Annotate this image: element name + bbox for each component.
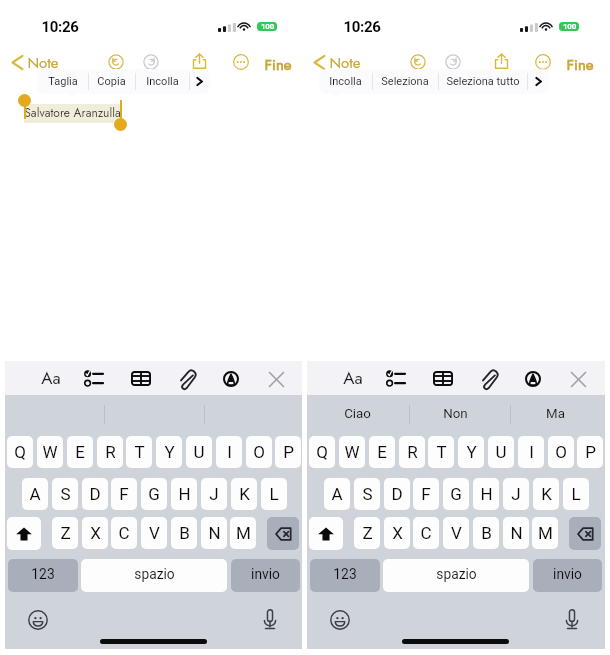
button[interactable]: Ciao <box>317 398 397 430</box>
button[interactable]: B <box>473 517 499 549</box>
button[interactable]: A <box>324 478 350 510</box>
button[interactable]: J <box>201 478 227 510</box>
button[interactable]: I <box>518 436 544 468</box>
button[interactable]: Close <box>268 371 285 388</box>
button[interactable]: Emoji <box>28 610 48 630</box>
button[interactable]: C <box>111 517 137 549</box>
button[interactable]: Dictation <box>565 609 579 630</box>
button[interactable]: Y <box>156 436 182 468</box>
button[interactable]: Undo <box>108 54 124 70</box>
button[interactable]: Note <box>313 51 361 74</box>
button[interactable]: More options <box>189 69 210 94</box>
button[interactable]: invio <box>533 559 602 592</box>
button[interactable]: Shift <box>7 517 41 550</box>
button[interactable]: S <box>52 478 78 510</box>
button[interactable]: Note <box>11 51 59 74</box>
button[interactable]: Shift <box>309 517 343 550</box>
button[interactable]: R <box>399 436 425 468</box>
button[interactable]: X <box>82 517 108 549</box>
button[interactable]: Redo <box>445 54 461 70</box>
button[interactable]: G <box>443 478 469 510</box>
button[interactable]: Dictation <box>263 609 277 630</box>
button[interactable]: Y <box>458 436 484 468</box>
button[interactable]: More <box>535 54 551 70</box>
button[interactable]: Backspace <box>267 517 299 550</box>
button[interactable]: F <box>111 478 137 510</box>
button[interactable]: H <box>473 478 499 510</box>
button[interactable]: More options <box>527 69 549 94</box>
button[interactable]: U <box>488 436 514 468</box>
button[interactable]: O <box>246 436 272 468</box>
button[interactable]: O <box>548 436 574 468</box>
button[interactable]: M <box>230 517 256 549</box>
button[interactable]: W <box>339 436 365 468</box>
button[interactable]: D <box>82 478 108 510</box>
button[interactable]: Z <box>354 517 380 549</box>
button[interactable]: F <box>413 478 439 510</box>
button[interactable]: G <box>141 478 167 510</box>
button[interactable]: N <box>503 517 529 549</box>
button[interactable]: spazio <box>81 559 227 592</box>
button[interactable]: M <box>532 517 558 549</box>
button[interactable]: Markup <box>525 371 541 387</box>
button[interactable]: Checklist <box>84 370 103 387</box>
button[interactable]: U <box>186 436 212 468</box>
button[interactable]: 123 <box>8 559 78 592</box>
button[interactable]: Undo <box>410 54 426 70</box>
button[interactable]: H <box>171 478 197 510</box>
button[interactable]: A <box>22 478 48 510</box>
button[interactable]: Table <box>131 371 151 386</box>
button[interactable]: Share <box>192 53 207 69</box>
button[interactable]: Redo <box>143 54 159 70</box>
button[interactable]: C <box>413 517 439 549</box>
button[interactable]: Non <box>415 398 495 430</box>
button[interactable]: Fine <box>566 54 594 76</box>
button[interactable]: Seleziona <box>372 69 438 94</box>
button[interactable]: Q <box>7 436 33 468</box>
button[interactable]: spazio <box>383 559 529 592</box>
button[interactable]: Fine <box>264 54 292 76</box>
button[interactable]: Ma <box>515 398 595 430</box>
button[interactable]: More <box>233 54 249 70</box>
button[interactable]: Markup <box>223 371 239 387</box>
button[interactable]: L <box>261 478 287 510</box>
button[interactable]: Share <box>494 53 509 69</box>
button[interactable]: Q <box>309 436 335 468</box>
button[interactable]: T <box>428 436 454 468</box>
button[interactable]: T <box>126 436 152 468</box>
button[interactable]: D <box>384 478 410 510</box>
button[interactable]: L <box>563 478 589 510</box>
button[interactable]: Close <box>570 371 587 388</box>
button[interactable]: P <box>275 436 301 468</box>
button[interactable]: Backspace <box>569 517 601 550</box>
button[interactable]: 123 <box>310 559 380 592</box>
button[interactable]: Aa <box>31 366 71 390</box>
button[interactable]: P <box>577 436 603 468</box>
button[interactable]: Table <box>433 371 453 386</box>
button[interactable]: Taglia <box>37 69 88 94</box>
button[interactable]: V <box>141 517 167 549</box>
button[interactable]: Emoji <box>330 610 350 630</box>
button[interactable]: Seleziona tutto <box>438 69 527 94</box>
button[interactable]: V <box>443 517 469 549</box>
button[interactable]: J <box>503 478 529 510</box>
button[interactable]: I <box>216 436 242 468</box>
button[interactable]: X <box>384 517 410 549</box>
button[interactable]: K <box>533 478 559 510</box>
button[interactable]: Attach <box>180 370 195 388</box>
button[interactable]: R <box>97 436 123 468</box>
button[interactable]: Copia <box>88 69 135 94</box>
button[interactable]: Incolla <box>135 69 190 94</box>
button[interactable]: K <box>231 478 257 510</box>
button[interactable]: Checklist <box>386 370 405 387</box>
button[interactable]: B <box>171 517 197 549</box>
button[interactable]: invio <box>231 559 300 592</box>
button[interactable]: E <box>67 436 93 468</box>
button[interactable]: E <box>369 436 395 468</box>
button[interactable]: N <box>201 517 227 549</box>
button[interactable]: Incolla <box>319 69 372 94</box>
button[interactable]: Z <box>52 517 78 549</box>
button[interactable]: S <box>354 478 380 510</box>
button[interactable]: W <box>37 436 63 468</box>
button[interactable]: Aa <box>333 366 373 390</box>
